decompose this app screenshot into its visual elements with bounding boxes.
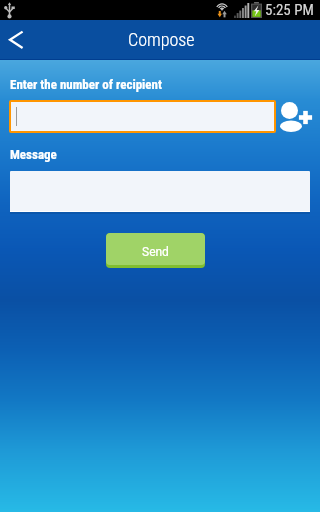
staticText: Compose xyxy=(128,29,195,50)
staticText: 5:25 PM xyxy=(265,1,314,19)
button[interactable]: Add contact xyxy=(279,100,313,133)
button[interactable]: Back xyxy=(0,20,40,59)
staticText: Send xyxy=(142,245,169,259)
button[interactable]: Send xyxy=(106,233,205,268)
staticText: Message xyxy=(10,147,57,162)
button[interactable] xyxy=(11,102,274,131)
staticText: Enter the number of recipient xyxy=(10,77,162,92)
